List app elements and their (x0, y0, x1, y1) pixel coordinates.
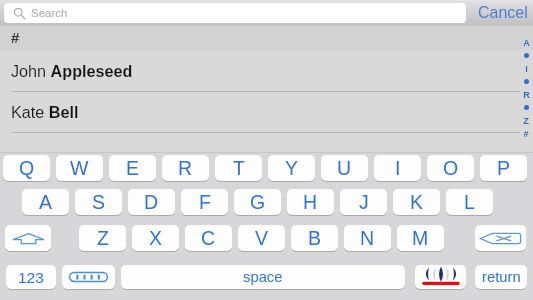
staticText: # (11, 29, 20, 46)
staticText: O (443, 157, 459, 179)
staticText: Kate Bell (11, 103, 79, 121)
staticText: P (497, 157, 511, 179)
staticText: R (523, 90, 530, 100)
button[interactable]: N (344, 225, 391, 251)
staticText: 123 (18, 269, 44, 286)
button[interactable]: W (56, 155, 103, 181)
staticText: E (126, 157, 140, 179)
staticText: C (201, 227, 216, 249)
button[interactable]: 123 (6, 265, 56, 289)
staticText: J (359, 191, 369, 213)
staticText: # (523, 129, 529, 139)
button[interactable]: V (238, 225, 285, 251)
staticText: X (149, 227, 163, 249)
staticText: Search (31, 7, 68, 20)
button[interactable]: D (128, 189, 175, 215)
button[interactable]: E (109, 155, 156, 181)
button[interactable]: X (132, 225, 179, 251)
button[interactable]: C (185, 225, 232, 251)
button[interactable]: Y (268, 155, 315, 181)
button[interactable]: John Appleseed (0, 50, 533, 91)
button[interactable]: G (234, 189, 281, 215)
button[interactable]: H (287, 189, 334, 215)
staticText: B (308, 227, 322, 249)
staticText: D (144, 191, 159, 213)
staticText: Y (285, 157, 299, 179)
staticText: N (360, 227, 375, 249)
staticText: F (199, 191, 211, 213)
button[interactable]: O (427, 155, 474, 181)
button[interactable]: A (22, 189, 69, 215)
button[interactable]: I (374, 155, 421, 181)
staticText: G (250, 191, 266, 213)
button[interactable]: T (215, 155, 262, 181)
staticText: W (70, 157, 89, 179)
button[interactable]: Next keyboard (62, 265, 115, 289)
button[interactable]: Section index (519, 36, 533, 140)
button[interactable]: Search (4, 3, 466, 23)
staticText: K (410, 191, 424, 213)
button[interactable]: space (121, 265, 405, 289)
button[interactable]: Dictation (415, 265, 466, 289)
button[interactable]: B (291, 225, 338, 251)
staticText: V (255, 227, 269, 249)
button[interactable]: Q (3, 155, 50, 181)
button[interactable]: Kate Bell (0, 91, 533, 132)
button[interactable]: U (321, 155, 368, 181)
staticText: space (243, 269, 283, 286)
staticText: Q (19, 157, 35, 179)
staticText: Z (523, 116, 529, 126)
staticText: I (525, 64, 528, 74)
staticText: H (303, 191, 318, 213)
button[interactable]: F (181, 189, 228, 215)
staticText: S (92, 191, 106, 213)
button[interactable]: L (446, 189, 493, 215)
button[interactable]: Cancel (472, 0, 533, 25)
staticText: return (482, 269, 521, 286)
staticText: John Appleseed (11, 62, 133, 80)
staticText: R (178, 157, 193, 179)
button[interactable]: K (393, 189, 440, 215)
staticText: Z (97, 227, 109, 249)
staticText: T (233, 157, 245, 179)
button[interactable]: R (162, 155, 209, 181)
staticText: L (464, 191, 475, 213)
staticText: I (395, 157, 401, 179)
button[interactable]: Shift (5, 225, 51, 251)
staticText: A (523, 38, 530, 48)
button[interactable]: M (397, 225, 444, 251)
staticText: Cancel (478, 4, 528, 22)
staticText: U (337, 157, 352, 179)
button[interactable]: S (75, 189, 122, 215)
button[interactable]: Z (79, 225, 126, 251)
button[interactable]: Backspace (475, 225, 526, 251)
staticText: A (39, 191, 53, 213)
button[interactable]: P (480, 155, 527, 181)
button[interactable]: J (340, 189, 387, 215)
button[interactable]: return (475, 265, 527, 289)
staticText: M (412, 227, 429, 249)
